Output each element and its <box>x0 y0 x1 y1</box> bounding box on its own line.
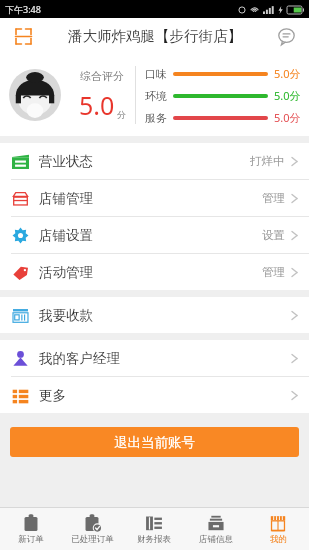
button[interactable]: Scan <box>8 21 38 51</box>
staticText: 综合评分 <box>80 69 124 83</box>
staticText: 店铺设置 <box>39 227 93 244</box>
staticText: 活动管理 <box>39 264 93 281</box>
button[interactable]: 财务报表 <box>123 508 185 550</box>
staticText: 5.0 <box>79 88 115 122</box>
button[interactable]: 我的 <box>247 508 309 550</box>
staticText: 我的客户经理 <box>39 350 120 367</box>
staticText: 更多 <box>39 387 66 404</box>
staticText: 财务报表 <box>137 534 171 545</box>
staticText: 管理 <box>262 191 285 205</box>
staticText: 已处理订单 <box>71 534 114 545</box>
button[interactable]: 店铺信息 <box>185 508 247 550</box>
button[interactable]: 活动管理 <box>0 254 309 290</box>
staticText: 我要收款 <box>39 307 93 324</box>
staticText: 营业状态 <box>39 153 93 170</box>
staticText: 5.0分 <box>274 110 301 125</box>
staticText: 5.0分 <box>274 88 301 103</box>
staticText: 潘大师炸鸡腿【步行街店】 <box>68 27 242 45</box>
staticText: 打烊中 <box>250 154 285 168</box>
button[interactable]: 我要收款 <box>0 297 309 333</box>
staticText: 环境 <box>145 89 167 103</box>
button[interactable]: 店铺管理 <box>0 180 309 216</box>
staticText: 我的 <box>270 534 287 545</box>
button[interactable]: 已处理订单 <box>61 508 123 550</box>
staticText: 下午3:48 <box>5 3 41 15</box>
staticText: 分 <box>117 109 126 120</box>
staticText: 5.0分 <box>274 66 301 81</box>
button[interactable]: 我的客户经理 <box>0 340 309 376</box>
button[interactable]: Messages <box>271 21 301 51</box>
staticText: 新订单 <box>18 534 44 545</box>
button[interactable]: 店铺设置 <box>0 217 309 253</box>
staticText: 店铺信息 <box>199 534 233 545</box>
staticText: 店铺管理 <box>39 190 93 207</box>
staticText: 服务 <box>145 111 167 125</box>
staticText: 设置 <box>262 228 285 242</box>
staticText: 退出当前账号 <box>114 434 195 451</box>
button[interactable]: 新订单 <box>0 508 61 550</box>
button[interactable]: 更多 <box>0 377 309 413</box>
staticText: 管理 <box>262 265 285 279</box>
button[interactable]: 退出当前账号 <box>10 427 299 457</box>
button[interactable]: 营业状态 <box>0 143 309 179</box>
staticText: 口味 <box>145 67 167 81</box>
